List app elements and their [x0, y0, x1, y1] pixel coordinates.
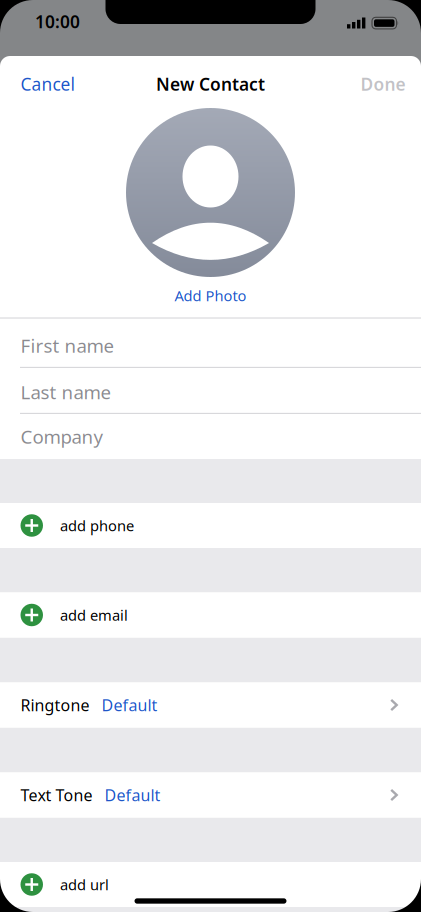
button[interactable]: Add Photo	[174, 286, 246, 305]
staticText: Ringtone	[20, 694, 89, 716]
button[interactable]: add url	[0, 862, 421, 907]
button[interactable]: Add Photo	[126, 108, 295, 277]
button[interactable]: Cancel	[20, 72, 74, 95]
staticText: Last name	[20, 380, 111, 404]
button[interactable]: Company	[0, 414, 421, 459]
button[interactable]: Ringtone	[0, 682, 421, 727]
staticText: add url	[60, 875, 109, 894]
staticText: Company	[20, 424, 103, 449]
staticText: 10:00	[35, 10, 80, 33]
staticText: Text Tone	[20, 784, 92, 806]
button[interactable]: Last name	[0, 369, 421, 414]
button[interactable]: Text Tone	[0, 772, 421, 817]
staticText: Default	[104, 784, 160, 806]
button[interactable]: add phone	[0, 503, 421, 548]
button[interactable]: Done	[360, 72, 405, 95]
staticText: add email	[60, 605, 128, 625]
staticText: Cancel	[20, 72, 74, 95]
staticText: add phone	[60, 516, 134, 535]
staticText: Done	[360, 72, 405, 95]
staticText: New Contact	[156, 72, 265, 95]
button[interactable]: First name	[0, 321, 421, 369]
staticText: Add Photo	[174, 286, 246, 305]
button[interactable]: add email	[0, 592, 421, 637]
staticText: First name	[20, 333, 114, 358]
staticText: Default	[101, 694, 157, 716]
